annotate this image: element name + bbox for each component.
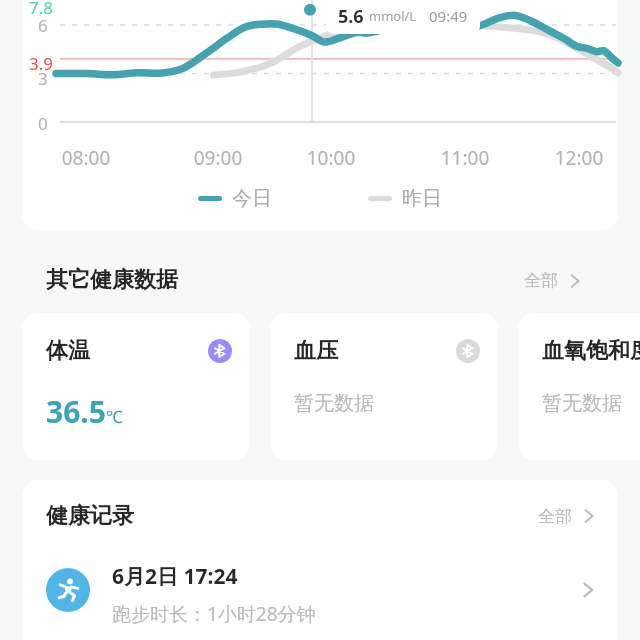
staticText: 全部 bbox=[538, 506, 572, 527]
button[interactable] bbox=[22, 0, 618, 230]
staticText: 6 bbox=[38, 14, 48, 37]
staticText: 09:49 bbox=[429, 6, 468, 26]
staticText: 其它健康数据 bbox=[46, 266, 178, 294]
button[interactable]: 全部 bbox=[524, 270, 584, 291]
staticText: 6月2日 17:24 bbox=[112, 562, 238, 591]
staticText: 10:00 bbox=[291, 145, 371, 171]
staticText: 跑步时长：1小时28分钟 bbox=[112, 601, 316, 627]
staticText: 体温 bbox=[46, 337, 90, 365]
other: Bluetooth bbox=[456, 339, 480, 363]
button[interactable]: 6月2日 17:24 bbox=[22, 558, 618, 640]
staticText: 健康记录 bbox=[46, 502, 134, 530]
staticText: 09:00 bbox=[178, 145, 258, 171]
button[interactable]: 健康记录 bbox=[22, 480, 618, 552]
staticText: 全部 bbox=[524, 270, 558, 291]
staticText: 今日 bbox=[232, 186, 272, 211]
button[interactable]: 血氧饱和度 bbox=[518, 313, 640, 460]
staticText: 血氧饱和度 bbox=[542, 337, 640, 365]
staticText: 3 bbox=[38, 67, 48, 90]
staticText: 11:00 bbox=[425, 145, 505, 171]
staticText: 36.5 bbox=[46, 391, 106, 432]
staticText: 昨日 bbox=[402, 186, 442, 211]
staticText: 7.8 bbox=[29, 0, 54, 19]
staticText: ℃ bbox=[106, 405, 123, 428]
button[interactable]: 体温 bbox=[22, 313, 250, 460]
staticText: 暂无数据 bbox=[294, 391, 374, 416]
staticText: 3.9 bbox=[29, 52, 54, 75]
staticText: 08:00 bbox=[46, 145, 126, 171]
other: Bluetooth bbox=[208, 339, 232, 363]
staticText: 12:00 bbox=[539, 145, 619, 171]
button[interactable]: 其它健康数据 bbox=[46, 266, 178, 294]
button[interactable]: 血压 bbox=[270, 313, 498, 460]
staticText: 0 bbox=[38, 112, 48, 135]
staticText: 5.6 bbox=[338, 4, 364, 29]
button[interactable]: 今日 bbox=[198, 186, 272, 211]
staticText: 血压 bbox=[294, 337, 338, 365]
staticText: 暂无数据 bbox=[542, 391, 622, 416]
staticText: mmol/L bbox=[369, 7, 417, 25]
button[interactable]: 昨日 bbox=[368, 186, 442, 211]
